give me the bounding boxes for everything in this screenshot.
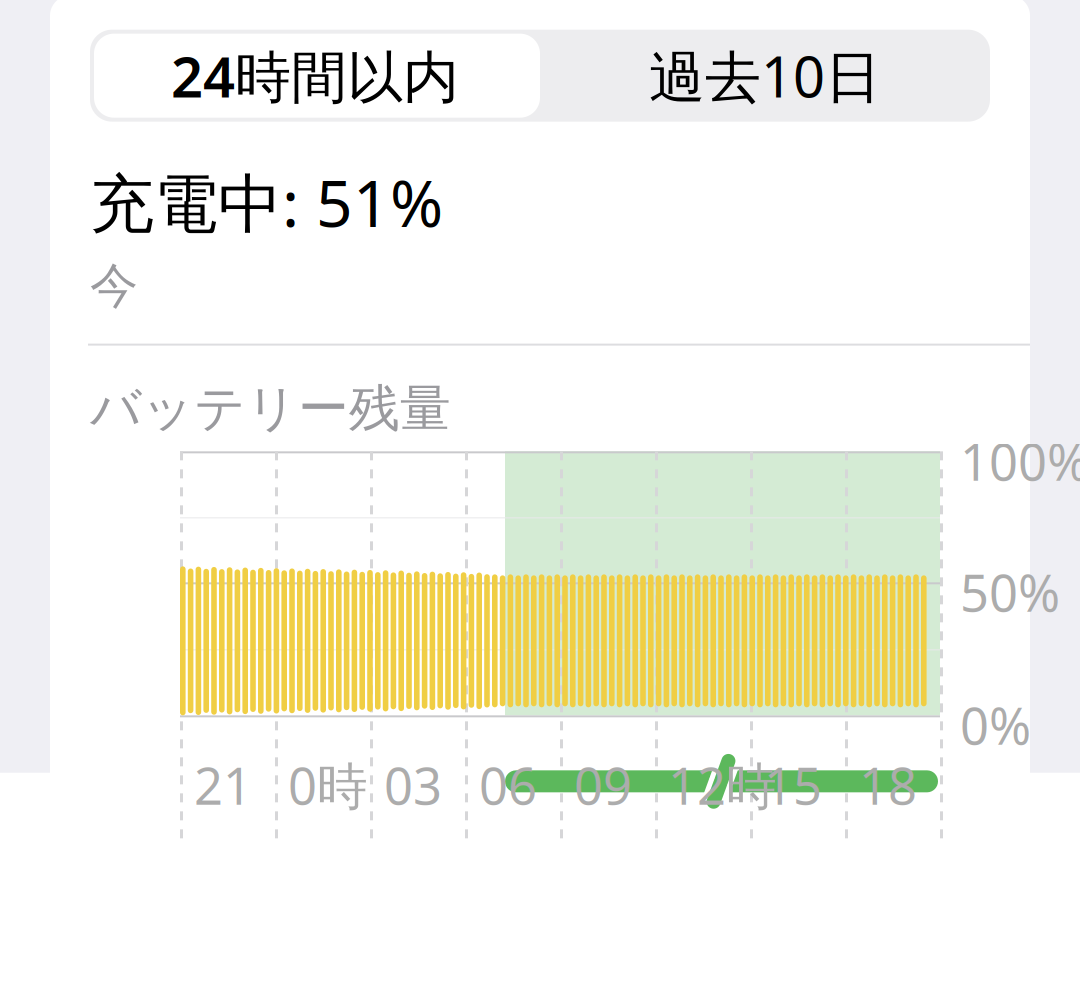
staticText: 今 xyxy=(90,257,138,316)
staticText: 100% xyxy=(960,427,1080,495)
staticText: 50% xyxy=(960,558,1060,626)
staticText: 充電中: 51% xyxy=(90,160,443,245)
staticText: 15 xyxy=(764,751,822,819)
staticText: 0時 xyxy=(288,751,368,819)
staticText: 21 xyxy=(194,751,252,819)
staticText: 0% xyxy=(960,691,1031,759)
staticText: 09 xyxy=(574,751,632,819)
button[interactable]: 過去10日 xyxy=(540,30,990,122)
staticText: 03 xyxy=(384,751,442,819)
staticText: 18 xyxy=(859,751,917,819)
staticText: 過去10日 xyxy=(649,38,881,113)
staticText: バッテリー残量 xyxy=(90,378,451,440)
staticText: 12時 xyxy=(668,751,777,819)
staticText: 24時間以内 xyxy=(171,38,459,113)
staticText: 06 xyxy=(479,751,537,819)
button[interactable]: 24時間以内 xyxy=(90,30,540,122)
